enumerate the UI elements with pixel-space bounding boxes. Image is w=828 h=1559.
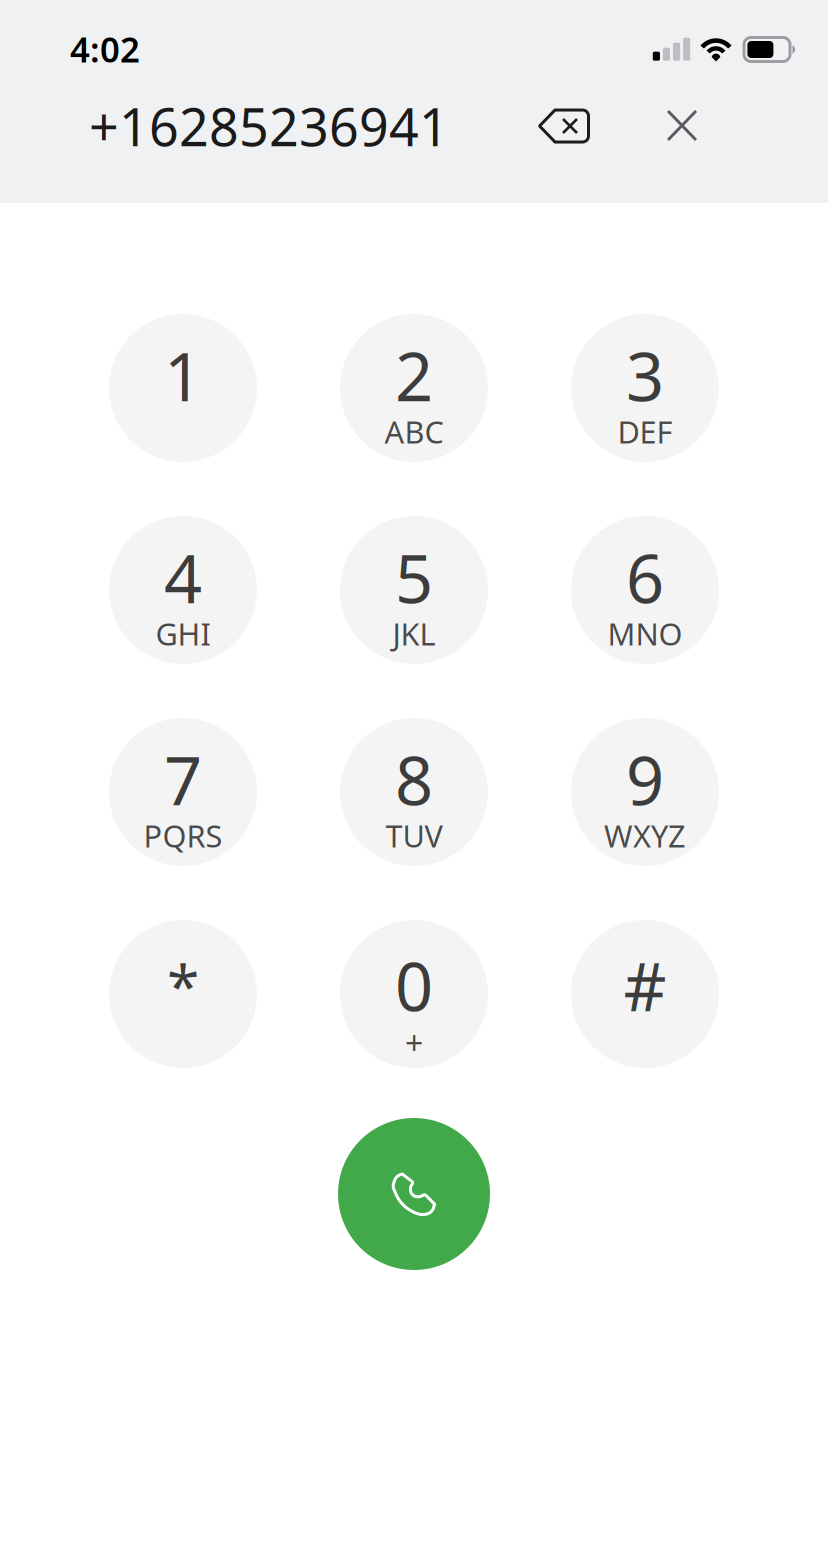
staticText: TUV bbox=[385, 815, 442, 856]
staticText: # bbox=[623, 941, 666, 1030]
staticText: DEF bbox=[617, 411, 672, 452]
staticText: +16285236941 bbox=[89, 91, 449, 161]
staticText: 6 bbox=[626, 533, 664, 622]
staticText: + bbox=[405, 1021, 423, 1064]
staticText: ABC bbox=[384, 411, 443, 452]
staticText: 2 bbox=[395, 331, 433, 420]
button[interactable]: # bbox=[571, 920, 719, 1068]
button[interactable]: 9 bbox=[571, 718, 719, 866]
staticText: WXYZ bbox=[604, 815, 686, 856]
staticText: 4:02 bbox=[70, 26, 140, 72]
button[interactable]: 8 bbox=[340, 718, 488, 866]
button[interactable]: 1 bbox=[109, 314, 257, 462]
button[interactable]: 5 bbox=[340, 516, 488, 664]
button[interactable]: * bbox=[109, 920, 257, 1068]
staticText: JKL bbox=[392, 613, 435, 654]
staticText: 1 bbox=[164, 331, 202, 420]
button[interactable]: 2 bbox=[340, 314, 488, 462]
button[interactable]: 7 bbox=[109, 718, 257, 866]
button[interactable]: 6 bbox=[571, 516, 719, 664]
staticText: GHI bbox=[155, 613, 210, 654]
staticText: 4 bbox=[164, 533, 202, 622]
staticText: PQRS bbox=[143, 815, 222, 856]
staticText: 9 bbox=[626, 735, 664, 824]
button[interactable]: 3 bbox=[571, 314, 719, 462]
button[interactable]: 0 bbox=[340, 920, 488, 1068]
staticText: 0 bbox=[395, 941, 433, 1030]
staticText: * bbox=[167, 946, 199, 1024]
staticText: 7 bbox=[164, 735, 202, 824]
button[interactable]: Close bbox=[630, 73, 734, 177]
staticText: 5 bbox=[395, 533, 433, 622]
staticText: 3 bbox=[626, 331, 664, 420]
button[interactable]: Delete bbox=[511, 74, 615, 178]
button[interactable]: 4 bbox=[109, 516, 257, 664]
button[interactable]: Call bbox=[338, 1118, 490, 1270]
staticText: 8 bbox=[395, 735, 433, 824]
staticText: MNO bbox=[607, 613, 682, 654]
